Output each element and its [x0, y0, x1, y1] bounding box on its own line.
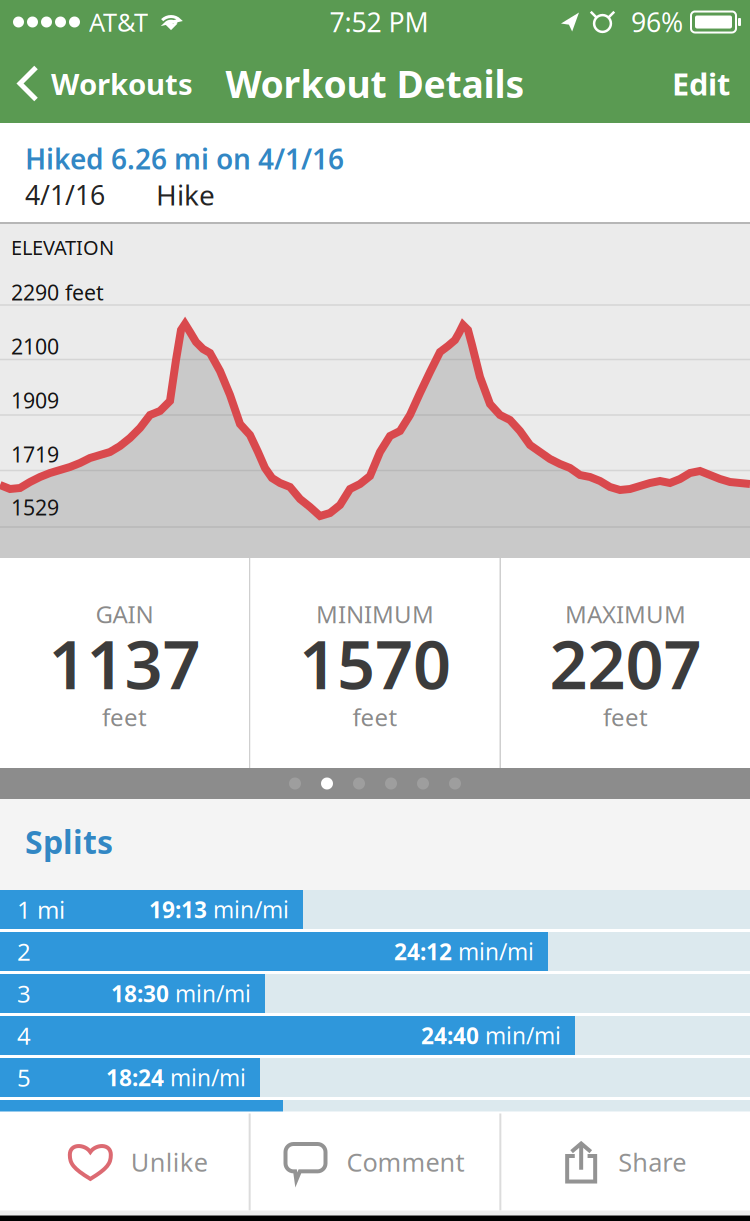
- staticText: AT&T: [89, 5, 148, 39]
- staticText: Splits: [25, 820, 113, 863]
- staticText: GAIN: [95, 598, 153, 630]
- staticText: min/mi: [452, 936, 534, 966]
- staticText: feet: [352, 701, 397, 733]
- staticText: min/mi: [479, 1020, 561, 1050]
- staticText: 2: [17, 936, 31, 967]
- staticText: MINIMUM: [316, 598, 434, 630]
- staticText: MAXIMUM: [565, 598, 686, 630]
- staticText: 1137: [48, 619, 200, 707]
- staticText: Unlike: [131, 1145, 208, 1179]
- staticText: 24:40: [421, 1020, 479, 1050]
- staticText: 18:24: [106, 1062, 164, 1092]
- staticText: feet: [603, 701, 648, 733]
- staticText: 1719: [11, 440, 59, 468]
- staticText: min/mi: [164, 1062, 246, 1092]
- button[interactable]: Edit: [672, 44, 750, 123]
- staticText: 1529: [11, 493, 59, 521]
- staticText: 2290 feet: [11, 278, 104, 306]
- staticText: 19:13: [149, 894, 207, 924]
- staticText: 2207: [549, 619, 701, 707]
- staticText: Hike: [156, 176, 215, 213]
- staticText: ELEVATION: [11, 234, 114, 261]
- staticText: 1909: [11, 386, 59, 414]
- staticText: 3: [17, 978, 31, 1009]
- button[interactable]: Unlike: [0, 1113, 249, 1210]
- staticText: Edit: [672, 63, 730, 104]
- staticText: Comment: [346, 1145, 464, 1179]
- staticText: 2100: [11, 332, 59, 360]
- staticText: 7:52 PM: [329, 4, 428, 40]
- staticText: 4: [17, 1020, 31, 1051]
- staticText: 96%: [631, 4, 683, 40]
- button[interactable]: Workouts: [0, 44, 193, 123]
- staticText: 4/1/16: [25, 177, 105, 212]
- staticText: 1 mi: [17, 894, 65, 925]
- staticText: 1570: [299, 619, 451, 707]
- staticText: Hiked 6.26 mi on 4/1/16: [25, 140, 344, 177]
- button[interactable]: Share: [501, 1113, 750, 1210]
- staticText: feet: [102, 701, 147, 733]
- staticText: 18:30: [111, 978, 169, 1008]
- staticText: 24:12: [394, 936, 452, 966]
- staticText: Workouts: [51, 64, 193, 103]
- button[interactable]: Comment: [251, 1113, 499, 1210]
- staticText: 5: [17, 1062, 31, 1093]
- staticText: Share: [618, 1145, 686, 1179]
- staticText: min/mi: [169, 978, 251, 1008]
- staticText: Workout Details: [225, 59, 524, 108]
- staticText: min/mi: [207, 894, 289, 924]
